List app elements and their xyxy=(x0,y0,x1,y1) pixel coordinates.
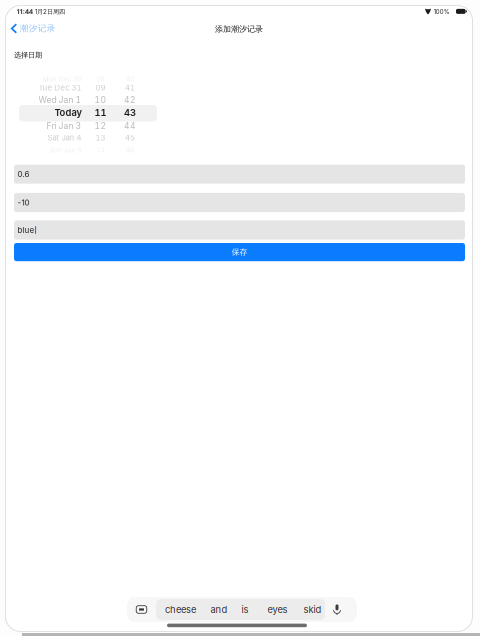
staticText: Today xyxy=(54,107,81,118)
staticText: 保存 xyxy=(231,247,247,257)
staticText: eyes xyxy=(267,604,287,615)
button[interactable]: 保存 xyxy=(14,243,465,261)
staticText: 13 xyxy=(95,133,105,142)
button[interactable]: skid xyxy=(298,597,326,622)
button[interactable]: is xyxy=(231,597,258,622)
staticText: 100% xyxy=(434,8,450,15)
staticText: 潮汐记录 xyxy=(20,23,56,34)
staticText: 44 xyxy=(124,121,136,131)
staticText: 选择日期 xyxy=(14,50,42,60)
staticText: Fri Jan 3 xyxy=(46,121,81,131)
staticText: 11 xyxy=(94,107,106,118)
staticText: 42 xyxy=(124,95,136,105)
staticText: -10 xyxy=(17,198,29,207)
staticText: Sun Jan 5 xyxy=(49,146,81,154)
button[interactable]: 潮汐记录 xyxy=(8,19,60,38)
staticText: 10 xyxy=(94,95,106,105)
button[interactable]: cheese xyxy=(158,597,202,622)
staticText: 1月2日周四 xyxy=(35,8,65,15)
staticText: Tue Dec 31 xyxy=(38,83,81,92)
staticText: 45 xyxy=(125,133,135,142)
button[interactable]: 0.6 xyxy=(14,164,465,184)
button[interactable]: -10 xyxy=(14,193,465,212)
staticText: 11:44 xyxy=(17,8,33,16)
staticText: blue xyxy=(17,225,34,235)
staticText: 09 xyxy=(95,83,105,92)
button[interactable]: and xyxy=(202,597,235,622)
staticText: cheese xyxy=(165,604,196,615)
button[interactable]: blue xyxy=(14,220,465,240)
staticText: Mon Dec 30 xyxy=(42,75,81,83)
staticText: 40 xyxy=(126,75,134,83)
staticText: 43 xyxy=(124,107,136,118)
staticText: 08 xyxy=(96,75,104,83)
staticText: 46 xyxy=(126,146,134,154)
staticText: 12 xyxy=(94,121,106,131)
button[interactable]: eyes xyxy=(259,597,295,622)
staticText: 0.6 xyxy=(17,169,29,179)
staticText: 14 xyxy=(96,146,104,154)
staticText: Sat Jan 4 xyxy=(47,133,81,142)
staticText: 添加潮汐记录 xyxy=(215,24,263,34)
staticText: is xyxy=(241,604,248,615)
button[interactable]: Minimize keyboard xyxy=(130,597,152,622)
staticText: skid xyxy=(303,604,321,615)
button[interactable]: Dictate xyxy=(326,597,348,622)
staticText: 41 xyxy=(125,83,135,92)
staticText: Wed Jan 1 xyxy=(38,95,81,105)
staticText: and xyxy=(210,604,227,615)
